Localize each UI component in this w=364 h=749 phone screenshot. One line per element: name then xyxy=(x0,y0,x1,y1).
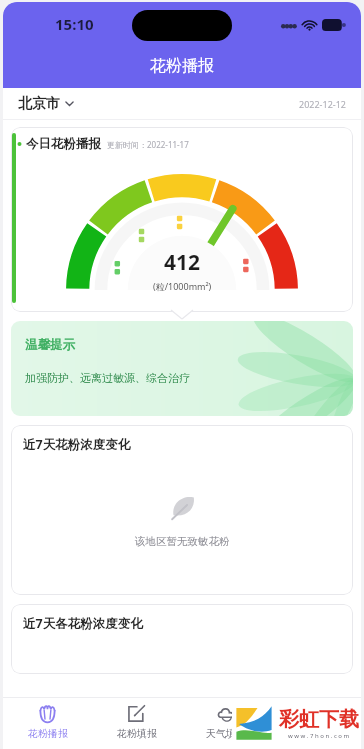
button[interactable]: 北京市 xyxy=(3,88,361,119)
staticText: 412 xyxy=(164,248,201,277)
button[interactable]: 花粉播报 xyxy=(3,697,92,749)
staticText: 加强防护、远离过敏源、综合治疗 xyxy=(25,371,190,385)
button[interactable]: 近7天各花粉浓度变化 xyxy=(11,604,353,674)
staticText: 今日花粉播报 xyxy=(26,136,101,152)
staticText: 花粉播报 xyxy=(150,56,214,76)
staticText: 彩虹下载 xyxy=(279,707,359,732)
staticText: 花粉播报 xyxy=(28,727,68,740)
staticText: 近7天各花粉浓度变化 xyxy=(23,615,143,632)
staticText: 温馨提示 xyxy=(25,337,75,353)
button[interactable]: 花粉填报 xyxy=(92,697,181,749)
staticText: 近7天花粉浓度变化 xyxy=(23,436,131,453)
staticText: 花粉填报 xyxy=(117,727,157,740)
staticText: 北京市 xyxy=(18,95,60,113)
staticText: w w w . 7 h o n . c o m xyxy=(288,732,350,740)
staticText: 15:10 xyxy=(55,14,94,34)
staticText: 天气填报 xyxy=(206,727,246,740)
button[interactable]: 天气填报 xyxy=(181,697,271,749)
staticText: 该地区暂无致敏花粉 xyxy=(135,535,230,548)
button[interactable]: 今日花粉播报 xyxy=(11,127,353,312)
button[interactable]: 温馨提示 xyxy=(11,321,353,416)
button[interactable]: 近7天花粉浓度变化 xyxy=(11,425,353,595)
staticText: 2022-12-12 xyxy=(299,98,346,110)
staticText: (粒/1000mm²) xyxy=(153,280,212,292)
staticText: 更新时间：2022-11-17 xyxy=(107,139,189,150)
